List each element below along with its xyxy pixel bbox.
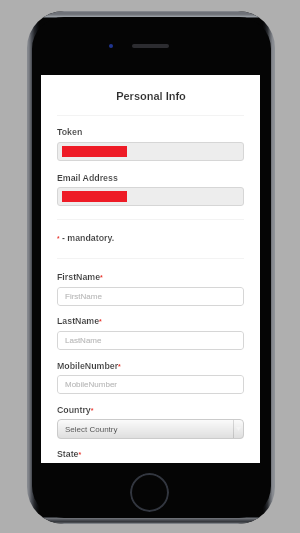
button[interactable]: [57, 142, 244, 161]
staticText: Country*: [57, 405, 94, 415]
staticText: Email Address: [57, 173, 118, 183]
staticText: MobileNumber: [65, 380, 118, 389]
other: Home: [130, 473, 169, 512]
staticText: * - mandatory.: [57, 233, 115, 243]
button[interactable]: MobileNumber: [57, 375, 244, 394]
staticText: LastName: [65, 336, 102, 345]
staticText: Token: [57, 127, 83, 137]
staticText: MobileNumber*: [57, 361, 121, 371]
staticText: FirstName*: [57, 272, 103, 282]
staticText: Personal Info: [116, 90, 186, 102]
button[interactable]: LastName: [57, 331, 244, 350]
staticText: LastName*: [57, 316, 102, 326]
other: Open country list: [233, 419, 244, 439]
staticText: Select Country: [65, 425, 118, 434]
staticText: FirstName: [65, 292, 102, 301]
button[interactable]: FirstName: [57, 287, 244, 306]
button[interactable]: [57, 187, 244, 206]
staticText: State*: [57, 449, 82, 459]
button[interactable]: Select Country: [57, 419, 244, 439]
